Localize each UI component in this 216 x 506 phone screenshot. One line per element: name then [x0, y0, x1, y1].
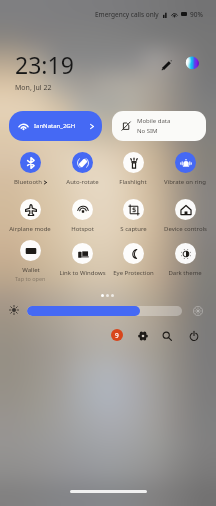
button[interactable]: Dark theme: [159, 243, 211, 279]
staticText: Device controls: [164, 225, 207, 233]
button[interactable]: S capture: [107, 199, 159, 235]
button[interactable]: Auto-rotate: [56, 152, 108, 188]
button[interactable]: Edit: [157, 56, 175, 74]
button[interactable]: Brightness: [27, 306, 182, 316]
staticText: 9: [115, 331, 119, 340]
button[interactable]: IanNatan_2GH: [9, 111, 102, 141]
button[interactable]: Airplane mode: [4, 199, 56, 235]
staticText: Eye Protection: [113, 269, 154, 277]
button[interactable]: Eye Protection: [107, 243, 159, 279]
staticText: No SIM: [137, 127, 158, 135]
staticText: Emergency calls only: [95, 10, 159, 19]
staticText: Dark theme: [168, 269, 202, 277]
button[interactable]: Settings: [136, 329, 149, 342]
staticText: Hotspot: [71, 225, 94, 233]
button[interactable]: Mobile data: [112, 111, 206, 141]
staticText: Mobile data: [137, 117, 171, 125]
staticText: Airplane mode: [9, 225, 51, 233]
staticText: Auto-rotate: [66, 178, 99, 186]
button[interactable]: Search: [160, 329, 173, 342]
staticText: Tap to open: [15, 275, 46, 282]
button[interactable]: AI assistant: [184, 55, 200, 71]
button[interactable]: Link to Windows: [56, 243, 108, 279]
staticText: Flashlight: [119, 178, 147, 186]
button[interactable]: Notifications: [111, 329, 123, 341]
staticText: Vibrate on ring: [164, 178, 206, 186]
button[interactable]: Power: [187, 329, 200, 342]
staticText: 90%: [190, 10, 203, 19]
staticText: Mon, Jul 22: [15, 83, 52, 93]
staticText: Wallet: [22, 266, 40, 274]
staticText: S capture: [120, 225, 147, 233]
staticText: IanNatan_2GH: [34, 122, 76, 130]
button[interactable]: Wallet: [4, 243, 56, 279]
button[interactable]: Device controls: [159, 199, 211, 235]
button[interactable]: Flashlight: [107, 152, 159, 188]
staticText: Bluetooth: [14, 178, 42, 186]
button[interactable]: Hotspot: [56, 199, 108, 235]
button[interactable]: Vibrate on ring: [159, 152, 211, 188]
staticText: 23:19: [15, 49, 74, 80]
button[interactable]: Bluetooth: [4, 152, 56, 188]
staticText: Link to Windows: [59, 269, 106, 277]
